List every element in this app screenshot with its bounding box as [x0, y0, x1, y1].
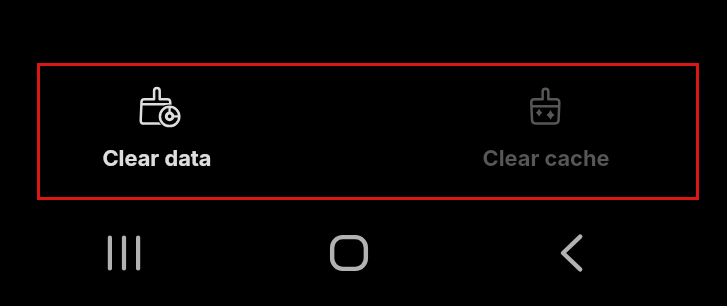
button[interactable]: Clear data	[57, 66, 257, 194]
staticText: Clear cache	[446, 145, 646, 175]
button[interactable]: Clear cache	[446, 66, 646, 194]
button[interactable]: Recent apps	[94, 223, 154, 283]
button[interactable]: Back	[542, 223, 602, 283]
staticText: Clear data	[57, 145, 257, 175]
button[interactable]: Home	[319, 223, 379, 283]
